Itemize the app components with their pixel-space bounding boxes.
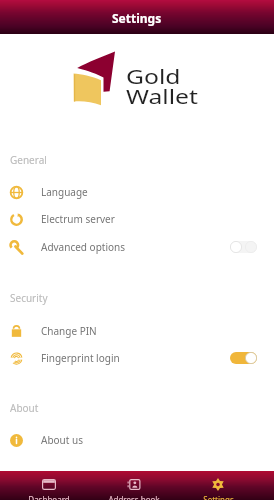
button[interactable]: About us xyxy=(0,426,274,454)
button[interactable]: Address book xyxy=(92,471,176,500)
staticText: General xyxy=(10,153,47,167)
staticText: Settings xyxy=(112,10,162,26)
staticText: Gold Wallet xyxy=(126,64,199,110)
button[interactable]: Dashboard xyxy=(7,471,91,500)
button[interactable]: Electrum server xyxy=(0,205,274,233)
staticText: Address book xyxy=(108,494,160,500)
button[interactable]: Language xyxy=(0,178,274,206)
staticText: Security xyxy=(10,291,48,305)
staticText: About xyxy=(10,401,39,415)
button[interactable] xyxy=(230,352,257,364)
staticText: Settings xyxy=(203,494,234,500)
staticText: Electrum server xyxy=(41,212,115,226)
staticText: Change PIN xyxy=(41,324,97,338)
staticText: Dashboard xyxy=(28,494,70,500)
button[interactable]: Advanced options xyxy=(0,233,274,261)
staticText: About us xyxy=(41,433,83,447)
button[interactable]: Settings xyxy=(176,471,260,500)
button[interactable]: Fingerprint login xyxy=(0,344,274,372)
button[interactable] xyxy=(230,241,257,253)
staticText: Language xyxy=(41,185,88,199)
staticText: Advanced options xyxy=(41,240,126,254)
staticText: Fingerprint login xyxy=(41,351,120,365)
button[interactable]: Change PIN xyxy=(0,317,274,345)
